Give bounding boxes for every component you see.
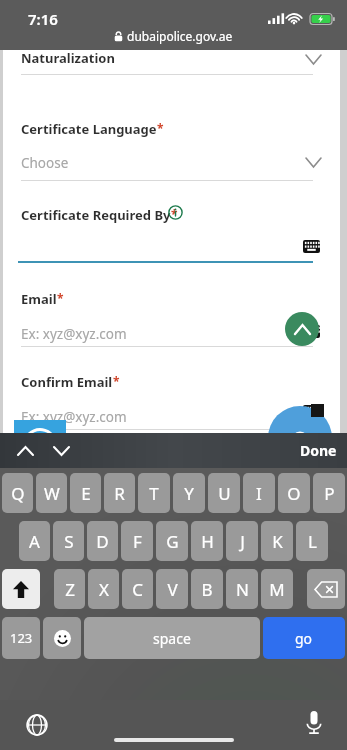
button[interactable]: Scroll to top [285, 312, 319, 346]
staticText: V [167, 578, 178, 601]
staticText: Email [21, 290, 57, 308]
staticText: * [171, 206, 178, 222]
button[interactable]: Change keyboard language [22, 710, 52, 740]
staticText: Ex: xyz@xyz.com [21, 325, 127, 343]
staticText: Certificate Language [21, 120, 157, 138]
button[interactable]: J [226, 521, 258, 561]
button[interactable]: space [84, 617, 260, 659]
button[interactable]: W [36, 473, 67, 513]
staticText: Confirm Email [21, 373, 113, 391]
staticText: Naturalization [21, 49, 115, 67]
button[interactable]: H [191, 521, 223, 561]
staticText: space [153, 629, 191, 648]
staticText: * [57, 290, 64, 306]
button[interactable]: G [156, 521, 188, 561]
staticText: U [218, 482, 231, 505]
staticText: Done [300, 441, 337, 460]
button[interactable]: N [226, 569, 258, 609]
staticText: B [201, 578, 213, 601]
button[interactable]: A [19, 521, 50, 561]
button[interactable]: Done [300, 441, 337, 460]
button[interactable]: M [261, 569, 293, 609]
staticText: P [324, 482, 335, 505]
button[interactable]: Previous field [12, 442, 38, 460]
staticText: 7:16 [28, 9, 58, 29]
staticText: H [201, 530, 214, 553]
button[interactable]: X [88, 569, 119, 609]
button[interactable]: T [138, 473, 170, 513]
staticText: G [166, 530, 179, 553]
button[interactable]: K [261, 521, 293, 561]
button[interactable]: S [53, 521, 84, 561]
button[interactable]: Emoji [43, 617, 81, 659]
button[interactable]: C [122, 569, 153, 609]
button[interactable]: V [156, 569, 188, 609]
staticText: I [256, 482, 262, 505]
staticText: N [236, 578, 249, 601]
button[interactable]: O [278, 473, 310, 513]
button[interactable]: Y [173, 473, 205, 513]
staticText: K [272, 530, 283, 553]
staticText: C [132, 578, 143, 601]
button[interactable]: Dictation [299, 708, 329, 738]
button[interactable]: Shift [2, 569, 40, 609]
staticText: Certificate Required By [21, 206, 171, 224]
staticText: Q [11, 482, 25, 505]
staticText: M [269, 578, 285, 601]
button[interactable]: Backspace [307, 569, 345, 609]
button[interactable]: Z [54, 569, 85, 609]
staticText: S [64, 530, 74, 553]
staticText: * [113, 373, 120, 389]
staticText: E [81, 482, 91, 505]
button[interactable]: R [104, 473, 135, 513]
staticText: T [149, 482, 159, 505]
staticText: * [157, 120, 164, 136]
button[interactable]: B [191, 569, 223, 609]
button[interactable]: L [296, 521, 328, 561]
staticText: R [114, 482, 125, 505]
button[interactable]: U [208, 473, 240, 513]
button[interactable]: Next field [48, 442, 74, 460]
staticText: Y [184, 482, 194, 505]
staticText: Ex: xyz@xyz.com [21, 408, 127, 426]
button[interactable]: D [87, 521, 118, 561]
staticText: go [295, 629, 313, 648]
button[interactable]: P [313, 473, 345, 513]
staticText: Choose [21, 154, 69, 172]
staticText: Z [65, 578, 75, 601]
button[interactable]: Q [2, 473, 33, 513]
button[interactable]: F [121, 521, 153, 561]
button[interactable]: E [70, 473, 101, 513]
staticText: O [287, 482, 301, 505]
staticText: 123 [10, 629, 33, 647]
staticText: A [29, 530, 40, 553]
button[interactable]: 123 [2, 617, 40, 659]
staticText: D [96, 530, 109, 553]
staticText: X [99, 578, 109, 601]
button[interactable]: Chat [268, 406, 332, 470]
button[interactable]: I [243, 473, 275, 513]
staticText: J [240, 530, 245, 553]
staticText: W [44, 482, 60, 505]
staticText: dubaipolice.gov.ae [127, 28, 233, 44]
button[interactable] [14, 420, 66, 443]
staticText: F [133, 530, 142, 553]
button[interactable]: go [263, 617, 345, 659]
staticText: L [308, 530, 317, 553]
